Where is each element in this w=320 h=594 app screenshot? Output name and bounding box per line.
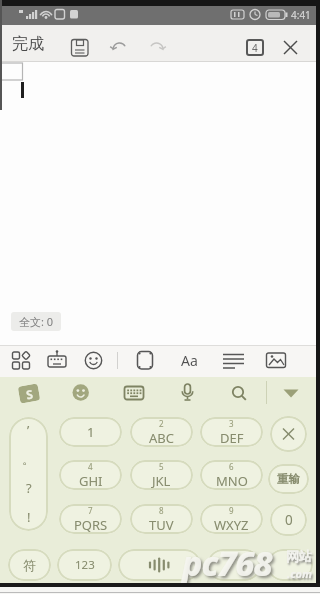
- button[interactable]: [282, 384, 300, 401]
- button[interactable]: [72, 384, 90, 402]
- staticText: 符: [23, 557, 36, 573]
- staticText: 。: [22, 451, 35, 467]
- staticText: 9: [229, 505, 234, 516]
- staticText: 8: [159, 505, 164, 516]
- button[interactable]: 9: [200, 504, 263, 534]
- button[interactable]: 1: [59, 417, 122, 447]
- button[interactable]: [146, 38, 168, 58]
- staticText: WXYZ: [214, 516, 249, 534]
- button[interactable]: 0: [270, 504, 307, 536]
- button[interactable]: 7: [59, 504, 122, 534]
- staticText: ?: [26, 479, 32, 497]
- staticText: 4:41: [291, 8, 311, 22]
- staticText: !: [27, 508, 31, 526]
- button[interactable]: 4: [246, 39, 264, 56]
- staticText: JKL: [152, 472, 171, 490]
- staticText: MNO: [216, 472, 248, 490]
- button[interactable]: 123: [57, 549, 112, 581]
- button[interactable]: [221, 348, 246, 373]
- button[interactable]: [207, 549, 261, 581]
- staticText: 4: [88, 461, 93, 472]
- button[interactable]: [9, 417, 48, 531]
- staticText: Aa: [181, 351, 198, 370]
- button[interactable]: 重输: [268, 464, 309, 494]
- staticText: GHI: [79, 472, 103, 490]
- button[interactable]: [45, 348, 70, 373]
- staticText: 7: [88, 505, 93, 516]
- button[interactable]: Aa: [175, 348, 203, 373]
- button[interactable]: S: [18, 383, 40, 404]
- button[interactable]: [108, 38, 130, 58]
- staticText: 4: [252, 41, 258, 55]
- button[interactable]: [81, 348, 106, 373]
- staticText: 网站: [286, 548, 312, 564]
- staticText: 2: [159, 418, 164, 429]
- staticText: 1: [87, 423, 95, 441]
- button[interactable]: 符: [8, 549, 51, 581]
- button[interactable]: [180, 383, 195, 403]
- button[interactable]: 全文: 0: [11, 312, 61, 331]
- staticText: 全文: 0: [19, 314, 54, 329]
- button[interactable]: [281, 39, 301, 57]
- button[interactable]: 6: [200, 460, 263, 490]
- staticText: 5: [159, 461, 164, 472]
- staticText: 重输: [277, 472, 300, 486]
- staticText: 6: [229, 461, 234, 472]
- staticText: DEF: [220, 429, 244, 447]
- button[interactable]: 5: [130, 460, 193, 490]
- button[interactable]: 4: [59, 460, 122, 490]
- button[interactable]: 8: [130, 504, 193, 534]
- button[interactable]: [124, 385, 144, 401]
- staticText: pc768: [182, 540, 272, 586]
- staticText: ABC: [149, 429, 174, 447]
- staticText: PQRS: [74, 516, 108, 534]
- button[interactable]: [270, 416, 307, 452]
- button[interactable]: 完成: [6, 31, 50, 57]
- staticText: .com: [287, 566, 312, 581]
- button[interactable]: [267, 549, 313, 581]
- button[interactable]: [133, 348, 158, 373]
- button[interactable]: 3: [200, 417, 263, 447]
- staticText: 123: [75, 557, 95, 573]
- staticText: TUV: [149, 516, 174, 534]
- staticText: 完成: [12, 34, 44, 54]
- staticText: S: [25, 385, 34, 402]
- staticText: 3: [229, 418, 234, 429]
- button[interactable]: [264, 348, 289, 373]
- staticText: 0: [285, 511, 293, 529]
- button[interactable]: 2: [130, 417, 193, 447]
- staticText: ’: [27, 421, 30, 439]
- button[interactable]: [9, 348, 34, 373]
- button[interactable]: [68, 36, 92, 60]
- button[interactable]: [231, 385, 248, 402]
- button[interactable]: [118, 549, 201, 581]
